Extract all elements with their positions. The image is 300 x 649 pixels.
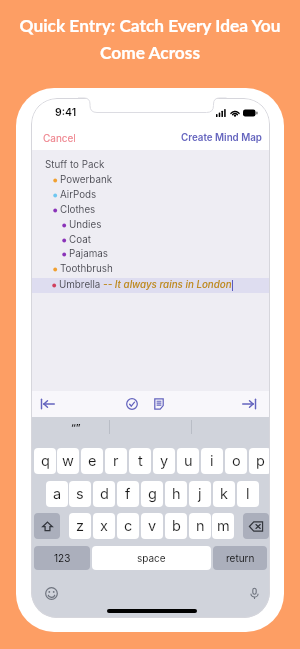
- staticText: Coat: [69, 234, 91, 246]
- button[interactable]: e: [81, 448, 103, 474]
- button[interactable]: Cancel: [38, 129, 81, 147]
- staticText: Cancel: [43, 132, 76, 144]
- staticText: Stuff to Pack: [45, 159, 105, 171]
- staticText: space: [137, 552, 166, 564]
- staticText: 9:41: [55, 106, 77, 119]
- staticText: x: [100, 517, 108, 535]
- staticText: v: [148, 517, 157, 535]
- staticText: f: [125, 485, 131, 503]
- button[interactable]: k: [213, 481, 235, 507]
- button[interactable]: a: [46, 481, 68, 507]
- button[interactable]: Backspace: [243, 513, 269, 539]
- staticText: q: [41, 452, 50, 470]
- button[interactable]: x: [93, 513, 115, 539]
- staticText: k: [220, 485, 228, 503]
- button[interactable]: o: [225, 448, 247, 474]
- button[interactable]: r: [105, 448, 127, 474]
- staticText: AirPods: [60, 189, 97, 201]
- button[interactable]: Indent: [242, 398, 257, 410]
- button[interactable]: z: [69, 513, 91, 539]
- button[interactable]: v: [141, 513, 163, 539]
- button[interactable]: c: [117, 513, 139, 539]
- staticText: Clothes: [60, 204, 96, 216]
- staticText: g: [148, 485, 157, 503]
- staticText: Undies: [69, 219, 102, 231]
- button[interactable]: space: [92, 546, 211, 570]
- staticText: j: [198, 485, 202, 503]
- button[interactable]: Mark complete: [126, 398, 138, 410]
- button[interactable]: m: [212, 513, 234, 539]
- button[interactable]: Dictation: [247, 586, 261, 600]
- staticText: e: [88, 452, 97, 470]
- button[interactable]: y: [153, 448, 175, 474]
- staticText: Powerbank: [60, 174, 113, 186]
- staticText: Create Mind Map: [181, 132, 262, 144]
- staticText: i: [210, 452, 214, 470]
- button[interactable]: n: [189, 513, 211, 539]
- button[interactable]: g: [141, 481, 163, 507]
- staticText: a: [53, 485, 62, 503]
- staticText: h: [172, 485, 181, 503]
- staticText: u: [184, 452, 193, 470]
- button[interactable]: Outdent: [40, 398, 55, 410]
- staticText: p: [256, 452, 265, 470]
- staticText: w: [62, 452, 74, 470]
- button[interactable]: Create Mind Map: [176, 129, 267, 147]
- button[interactable]: Emoji: [44, 586, 58, 600]
- button[interactable]: 123: [34, 546, 90, 570]
- staticText: o: [232, 452, 241, 470]
- staticText: z: [76, 517, 85, 535]
- staticText: “”: [71, 422, 81, 433]
- staticText: Quick Entry: Catch Every Idea You Come A…: [10, 15, 290, 63]
- staticText: return: [226, 552, 255, 564]
- staticText: Pajamas: [69, 248, 108, 260]
- button[interactable]: h: [165, 481, 187, 507]
- button[interactable]: f: [117, 481, 139, 507]
- button[interactable]: l: [237, 481, 259, 507]
- staticText: Toothbrush: [60, 263, 113, 275]
- button[interactable]: return: [213, 546, 267, 570]
- staticText: d: [100, 485, 109, 503]
- staticText: Umbrella -- It always rains in London: [59, 279, 232, 291]
- button[interactable]: i: [201, 448, 223, 474]
- staticText: l: [246, 485, 250, 503]
- button[interactable]: b: [165, 513, 187, 539]
- button[interactable]: p: [249, 448, 270, 474]
- button[interactable]: Add note: [153, 398, 165, 410]
- button[interactable]: s: [69, 481, 91, 507]
- button[interactable]: q: [34, 448, 56, 474]
- staticText: m: [217, 517, 230, 535]
- button[interactable]: w: [57, 448, 79, 474]
- button[interactable]: d: [93, 481, 115, 507]
- button[interactable]: u: [177, 448, 199, 474]
- staticText: c: [124, 517, 133, 535]
- staticText: r: [113, 452, 119, 470]
- button[interactable]: Shift: [34, 513, 60, 539]
- button[interactable]: j: [189, 481, 211, 507]
- staticText: n: [196, 517, 205, 535]
- staticText: s: [76, 485, 84, 503]
- button[interactable]: t: [129, 448, 151, 474]
- staticText: 123: [54, 552, 71, 564]
- staticText: b: [172, 517, 181, 535]
- staticText: t: [138, 452, 143, 470]
- staticText: y: [160, 452, 169, 470]
